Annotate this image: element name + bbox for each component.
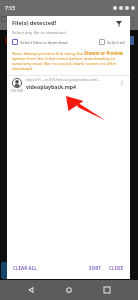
staticText: videoplayback.mp4 [26, 83, 77, 90]
staticText: https://r1---sn-h557lnes.xx.googlevideo.… [26, 77, 101, 82]
staticText: Select all [107, 39, 125, 45]
button[interactable]: Back [24, 283, 38, 297]
staticText: File(s) detected! [12, 19, 57, 27]
button[interactable]: Recents [100, 283, 114, 297]
button[interactable]: CLOSE [107, 263, 126, 273]
button[interactable]: SORT [87, 263, 103, 273]
staticText: Select files to download [20, 39, 68, 45]
button[interactable]: Home [62, 283, 76, 297]
staticText: CLOSE [109, 265, 124, 271]
staticText: CLEAR ALL [13, 265, 37, 271]
staticText: Note: Always preview link using the Stre… [12, 50, 125, 71]
button[interactable]: Select files to download [12, 39, 68, 45]
button[interactable]: More options [116, 77, 128, 89]
button[interactable]: 195.5KB [7, 77, 130, 93]
button[interactable]: Select all [99, 39, 125, 45]
button[interactable]: Filter [112, 17, 126, 31]
staticText: Select any file to download [12, 29, 66, 35]
staticText: SORT [89, 265, 101, 271]
staticText: 195.5KB [10, 88, 23, 93]
button[interactable]: CLEAR ALL [11, 263, 39, 273]
staticText: 7:13 [5, 5, 15, 12]
